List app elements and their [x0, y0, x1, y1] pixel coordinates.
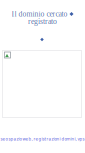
- button[interactable]: Link: [40, 38, 44, 41]
- staticText: seo spazio web, registrazioni domini, vp…: [0, 136, 84, 142]
- button[interactable]: seo spazio web, registrazioni domini, vp…: [0, 136, 84, 142]
- staticText: Il dominio cercato: [11, 10, 67, 18]
- staticText: registrato: [28, 17, 57, 26]
